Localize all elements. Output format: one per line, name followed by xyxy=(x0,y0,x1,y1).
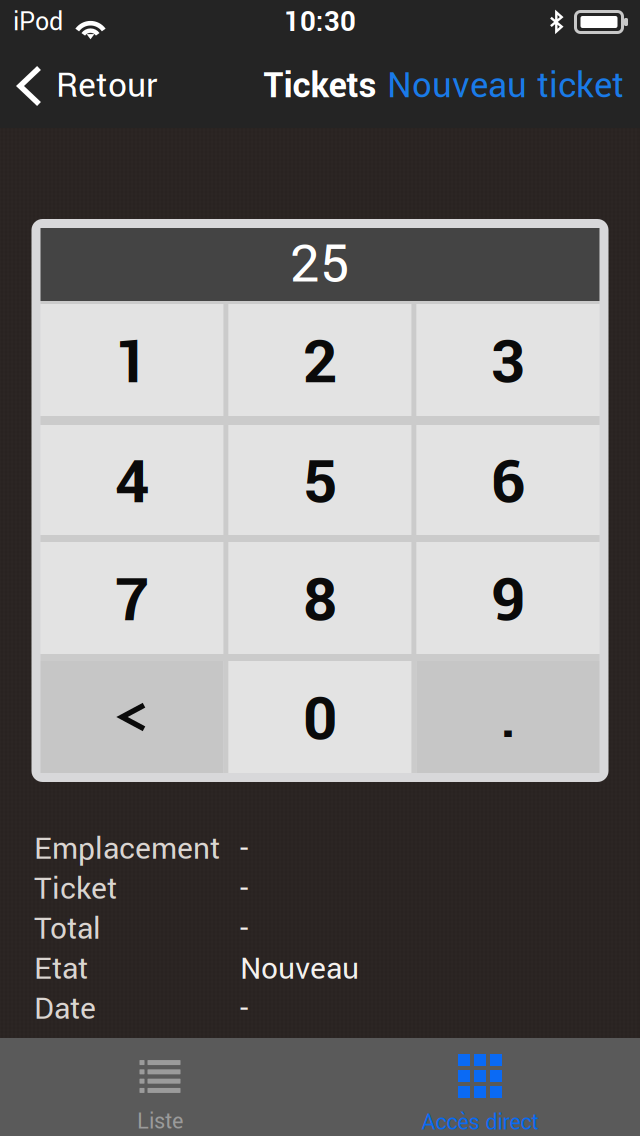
staticText: 9 xyxy=(491,558,525,644)
staticText: Liste xyxy=(137,1106,183,1136)
button[interactable]: . xyxy=(416,661,599,773)
button[interactable]: 1 xyxy=(40,304,223,416)
staticText: - xyxy=(240,987,248,1031)
staticText: Nouveau ticket xyxy=(387,61,624,111)
staticText: Etat xyxy=(34,947,88,991)
staticText: Total xyxy=(34,907,101,951)
staticText: 10:30 xyxy=(284,2,356,42)
staticText: 4 xyxy=(115,440,149,526)
staticText: Tickets xyxy=(263,61,376,111)
staticText: 3 xyxy=(491,320,525,406)
button[interactable]: 6 xyxy=(416,425,599,535)
staticText: 2 xyxy=(303,320,337,406)
button[interactable]: Nouveau ticket xyxy=(387,43,624,129)
button[interactable]: 7 xyxy=(40,542,223,654)
staticText: Emplacement xyxy=(34,827,220,871)
staticText: 1 xyxy=(115,320,149,406)
staticText: Ticket xyxy=(34,867,117,911)
staticText: 5 xyxy=(303,440,337,526)
staticText: . xyxy=(500,682,515,758)
button[interactable]: 3 xyxy=(416,304,599,416)
staticText: - xyxy=(240,867,248,911)
staticText: Accès direct xyxy=(421,1107,538,1136)
button[interactable]: 4 xyxy=(40,425,223,535)
button[interactable]: Liste xyxy=(0,1038,320,1136)
button[interactable]: 8 xyxy=(228,542,411,654)
staticText: 6 xyxy=(491,440,525,526)
staticText: Nouveau xyxy=(240,947,359,991)
staticText: iPod xyxy=(13,4,63,40)
staticText: 8 xyxy=(303,558,337,644)
button[interactable]: 9 xyxy=(416,542,599,654)
staticText: - xyxy=(240,827,248,871)
button[interactable]: 5 xyxy=(228,425,411,535)
staticText: 0 xyxy=(303,677,337,763)
staticText: 7 xyxy=(115,558,149,644)
staticText: 25 xyxy=(290,226,350,303)
staticText: - xyxy=(240,907,248,951)
button[interactable]: Accès direct xyxy=(320,1038,640,1136)
staticText: Date xyxy=(34,987,96,1031)
button[interactable]: Effacer xyxy=(40,661,223,773)
button[interactable]: 2 xyxy=(228,304,411,416)
button[interactable]: 0 xyxy=(228,661,411,773)
button[interactable]: Retour xyxy=(16,48,158,124)
staticText: Retour xyxy=(56,62,158,110)
